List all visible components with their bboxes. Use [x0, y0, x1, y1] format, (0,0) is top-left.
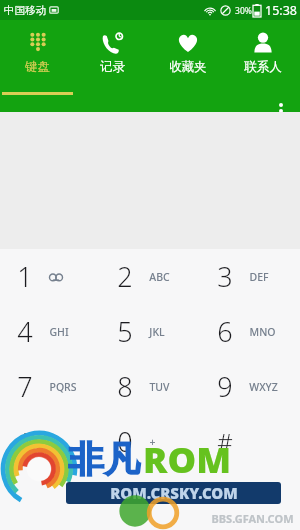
staticText: 收藏夹 — [169, 59, 207, 75]
staticText: BBS.GFAN.COM — [211, 511, 294, 526]
button[interactable]: 0 — [100, 414, 200, 469]
staticText: 记录 — [100, 59, 125, 75]
button[interactable]: 联系人 — [225, 20, 300, 75]
staticText: PQRS — [49, 380, 77, 394]
staticText: 3 — [217, 258, 233, 295]
staticText: 4 — [17, 313, 33, 350]
staticText: 7 — [17, 368, 33, 405]
button[interactable]: 记录 — [75, 20, 150, 75]
staticText: * — [18, 425, 32, 458]
staticText: GHI — [49, 325, 69, 339]
staticText: 联系人 — [244, 59, 282, 75]
staticText: 键盘 — [25, 59, 50, 75]
button[interactable]: 7 — [0, 359, 100, 414]
staticText: 2 — [117, 258, 133, 295]
button[interactable]: 1 — [0, 249, 100, 304]
staticText: ROM.CRSKY.COM — [110, 483, 238, 503]
button[interactable]: 键盘 — [0, 20, 75, 75]
staticText: # — [217, 425, 233, 458]
button[interactable]: More options — [268, 96, 294, 126]
staticText: ROM — [143, 435, 231, 484]
staticText: WXYZ — [249, 380, 278, 394]
staticText: 1 — [17, 258, 33, 295]
button[interactable]: 4 — [0, 304, 100, 359]
staticText: DEF — [249, 270, 269, 284]
button[interactable]: 9 — [200, 359, 300, 414]
staticText: TUV — [149, 380, 170, 394]
staticText: 9 — [217, 368, 233, 405]
staticText: + — [149, 435, 156, 449]
button[interactable]: 8 — [100, 359, 200, 414]
button[interactable]: 2 — [100, 249, 200, 304]
staticText: 30% — [235, 5, 252, 17]
staticText: 5 — [117, 313, 133, 350]
staticText: 6 — [217, 313, 233, 350]
button[interactable]: 5 — [100, 304, 200, 359]
staticText: ABC — [149, 270, 170, 284]
button[interactable]: 3 — [200, 249, 300, 304]
staticText: 中国移动 — [4, 4, 46, 17]
button[interactable]: # — [200, 414, 300, 469]
staticText: 8 — [117, 368, 133, 405]
staticText: 0 — [117, 423, 133, 460]
button[interactable]: 收藏夹 — [150, 20, 225, 75]
button[interactable]: 6 — [200, 304, 300, 359]
staticText: MNO — [249, 325, 276, 339]
staticText: 非凡 — [68, 437, 140, 482]
staticText: 15:38 — [265, 2, 297, 19]
button[interactable]: * — [0, 414, 100, 469]
staticText: JKL — [149, 325, 165, 339]
